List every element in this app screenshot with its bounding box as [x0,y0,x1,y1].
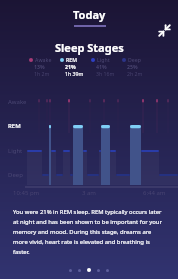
staticText: 10:45 pm [13,189,40,197]
staticText: Light [8,147,23,155]
staticText: Today [73,7,106,22]
button[interactable]: Page 1 [69,269,72,272]
staticText: 41% [96,63,107,70]
staticText: Deep [8,171,23,179]
button[interactable]: Light [91,56,122,77]
button[interactable]: Collapse [154,20,174,40]
staticText: 21% [65,63,76,70]
staticText: REM [8,122,21,130]
staticText: You were 21% in REM sleep. REM typically… [13,208,165,255]
button[interactable]: Page 5 [106,269,109,272]
staticText: 25% [127,63,138,70]
staticText: 3h 16m [96,70,115,77]
button[interactable]: REM [60,56,91,77]
button[interactable]: Page 3 [87,268,91,272]
button[interactable]: Today [73,7,106,27]
button[interactable]: Deep [122,56,153,77]
staticText: 3 am [82,189,96,197]
button[interactable]: Awake [29,56,60,77]
staticText: Deep [128,56,141,63]
staticText: Light [97,56,110,63]
staticText: REM [66,56,77,63]
staticText: 2h 2m [127,70,143,77]
staticText: 13% [34,63,45,70]
staticText: Sleep Stages [55,40,124,55]
button[interactable]: Page 4 [97,269,100,272]
staticText: Awake [8,98,27,106]
staticText: 1h 2m [34,70,50,77]
staticText: Awake [35,56,52,63]
staticText: 6:44 am [143,189,166,197]
staticText: 1h 39m [65,70,84,77]
button[interactable]: Page 2 [78,269,81,272]
